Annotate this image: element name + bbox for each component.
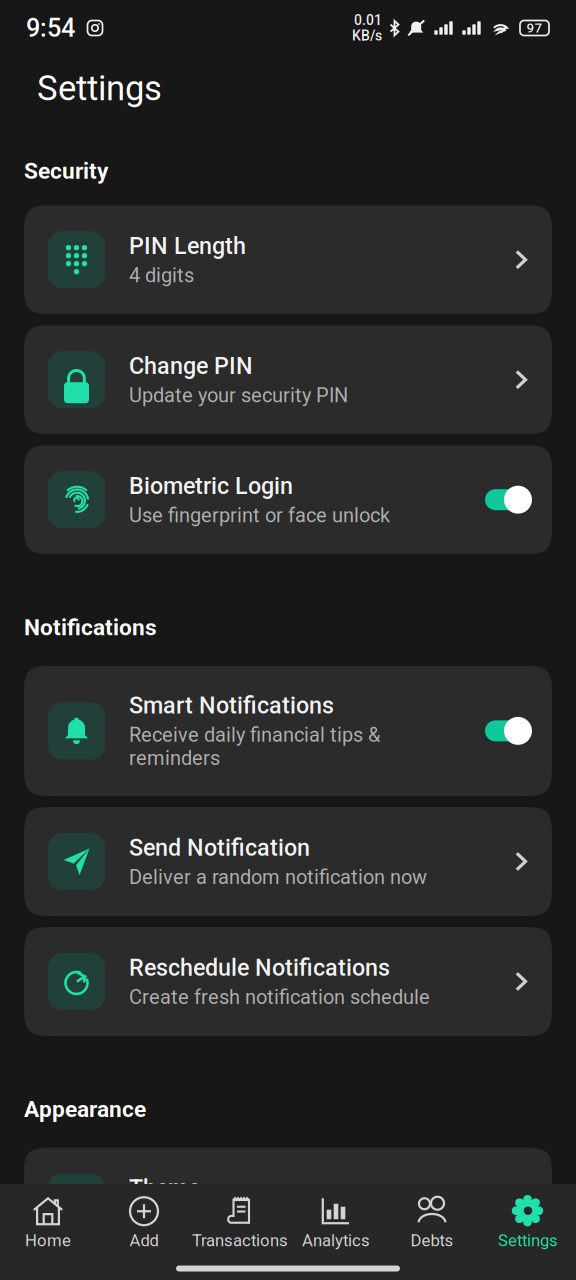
button[interactable]: Reschedule Notifications: [24, 927, 552, 1036]
staticText: Settings: [498, 1231, 558, 1250]
staticText: 97: [526, 20, 542, 36]
staticText: Home: [25, 1231, 71, 1250]
staticText: Receive daily financial tips & reminders: [129, 723, 380, 770]
staticText: Create fresh notification schedule: [129, 985, 430, 1009]
staticText: Deliver a random notification now: [129, 865, 427, 889]
button[interactable]: Analytics: [288, 1184, 384, 1257]
button[interactable]: Debts: [384, 1184, 480, 1257]
staticText: 4 digits: [129, 264, 194, 287]
staticText: Smart Notifications: [129, 692, 334, 719]
staticText: Appearance: [24, 1096, 146, 1123]
staticText: Theme: [129, 1175, 200, 1202]
staticText: Analytics: [302, 1231, 370, 1250]
staticText: Settings: [37, 68, 162, 109]
button[interactable]: Transactions: [192, 1184, 288, 1257]
staticText: Dark mode: [129, 1206, 226, 1229]
button[interactable]: Add: [96, 1184, 192, 1257]
button[interactable]: Change PIN: [24, 325, 552, 434]
staticText: Use fingerprint or face unlock: [129, 504, 390, 527]
button[interactable]: Smart Notifications: [24, 666, 552, 796]
staticText: Transactions: [192, 1231, 288, 1250]
button[interactable]: Biometric Login: [24, 445, 552, 554]
button[interactable]: Theme: [24, 1147, 552, 1256]
staticText: Change PIN: [129, 352, 253, 380]
staticText: Debts: [410, 1231, 453, 1250]
staticText: Update your security PIN: [129, 384, 348, 407]
staticText: 9:54: [26, 13, 75, 43]
staticText: PIN Length: [129, 232, 246, 260]
staticText: Biometric Login: [129, 472, 293, 500]
staticText: Reschedule Notifications: [129, 954, 390, 981]
button[interactable]: Home: [0, 1184, 96, 1257]
staticText: 0.01: [354, 12, 382, 28]
button[interactable]: Send Notification: [24, 807, 552, 916]
staticText: Send Notification: [129, 834, 310, 861]
staticText: Security: [24, 158, 108, 184]
button[interactable]: Settings: [480, 1184, 576, 1257]
button[interactable]: PIN Length: [24, 205, 552, 314]
staticText: Notifications: [24, 614, 157, 641]
staticText: Add: [129, 1231, 158, 1250]
staticText: KB/s: [352, 27, 382, 44]
